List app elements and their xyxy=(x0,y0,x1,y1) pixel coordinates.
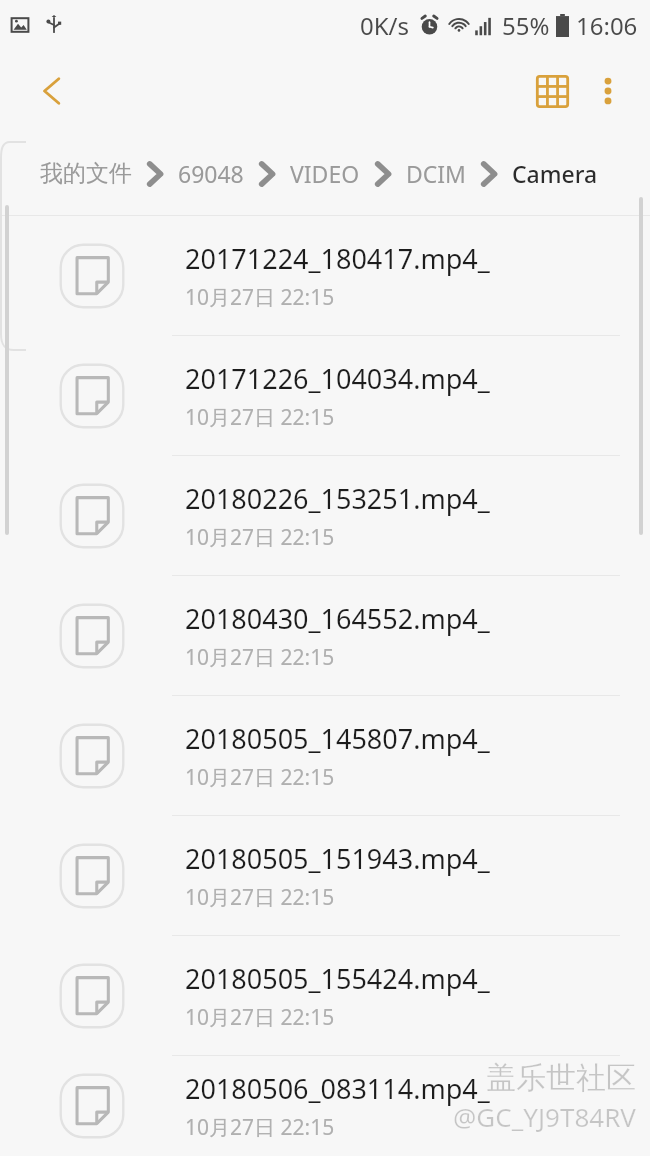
staticText: @GC_YJ9T84RV xyxy=(453,1099,636,1134)
button[interactable]: Grid view xyxy=(524,63,580,119)
button[interactable]: 我的文件 xyxy=(40,159,132,188)
staticText: 10月27日 22:15 xyxy=(185,1113,335,1142)
button[interactable]: 20180505_145807.mp4_ xyxy=(0,696,650,816)
staticText: 10月27日 22:15 xyxy=(185,1003,335,1032)
staticText: 20180506_083114.mp4_ xyxy=(185,1070,490,1107)
staticText: 20180430_164552.mp4_ xyxy=(185,600,490,637)
button[interactable]: 20180505_151943.mp4_ xyxy=(0,816,650,936)
staticText: Camera xyxy=(512,158,598,189)
staticText: 20171226_104034.mp4_ xyxy=(185,360,490,397)
button[interactable]: More options xyxy=(580,63,636,119)
button[interactable]: 20180506_083114.mp4_ xyxy=(0,1056,650,1156)
staticText: 10月27日 22:15 xyxy=(185,883,335,912)
staticText: DCIM xyxy=(406,158,466,189)
button[interactable]: DCIM xyxy=(406,158,466,189)
staticText: 10月27日 22:15 xyxy=(185,763,335,792)
staticText: 16:06 xyxy=(576,9,638,42)
button[interactable]: 20171226_104034.mp4_ xyxy=(0,336,650,456)
button[interactable]: 20180226_153251.mp4_ xyxy=(0,456,650,576)
staticText: 盖乐世社区 xyxy=(486,1059,636,1097)
button[interactable]: VIDEO xyxy=(290,158,360,189)
staticText: 10月27日 22:15 xyxy=(185,523,335,552)
staticText: 10月27日 22:15 xyxy=(185,643,335,672)
button[interactable]: 20180430_164552.mp4_ xyxy=(0,576,650,696)
staticText: VIDEO xyxy=(290,158,360,189)
staticText: 20180226_153251.mp4_ xyxy=(185,480,490,517)
staticText: 20171224_180417.mp4_ xyxy=(185,240,490,277)
staticText: 0K/s xyxy=(360,9,410,42)
staticText: 20180505_151943.mp4_ xyxy=(185,840,490,877)
button[interactable]: 20171224_180417.mp4_ xyxy=(0,216,650,336)
button[interactable]: 20180505_155424.mp4_ xyxy=(0,936,650,1056)
staticText: 55% xyxy=(502,9,550,42)
button[interactable]: Camera xyxy=(512,158,598,189)
staticText: 10月27日 22:15 xyxy=(185,283,335,312)
staticText: 10月27日 22:15 xyxy=(185,403,335,432)
staticText: 我的文件 xyxy=(40,159,132,188)
staticText: 20180505_145807.mp4_ xyxy=(185,720,490,757)
button[interactable]: Back xyxy=(24,63,80,119)
staticText: 69048 xyxy=(178,158,244,189)
staticText: 20180505_155424.mp4_ xyxy=(185,960,490,997)
button[interactable]: 69048 xyxy=(178,158,244,189)
